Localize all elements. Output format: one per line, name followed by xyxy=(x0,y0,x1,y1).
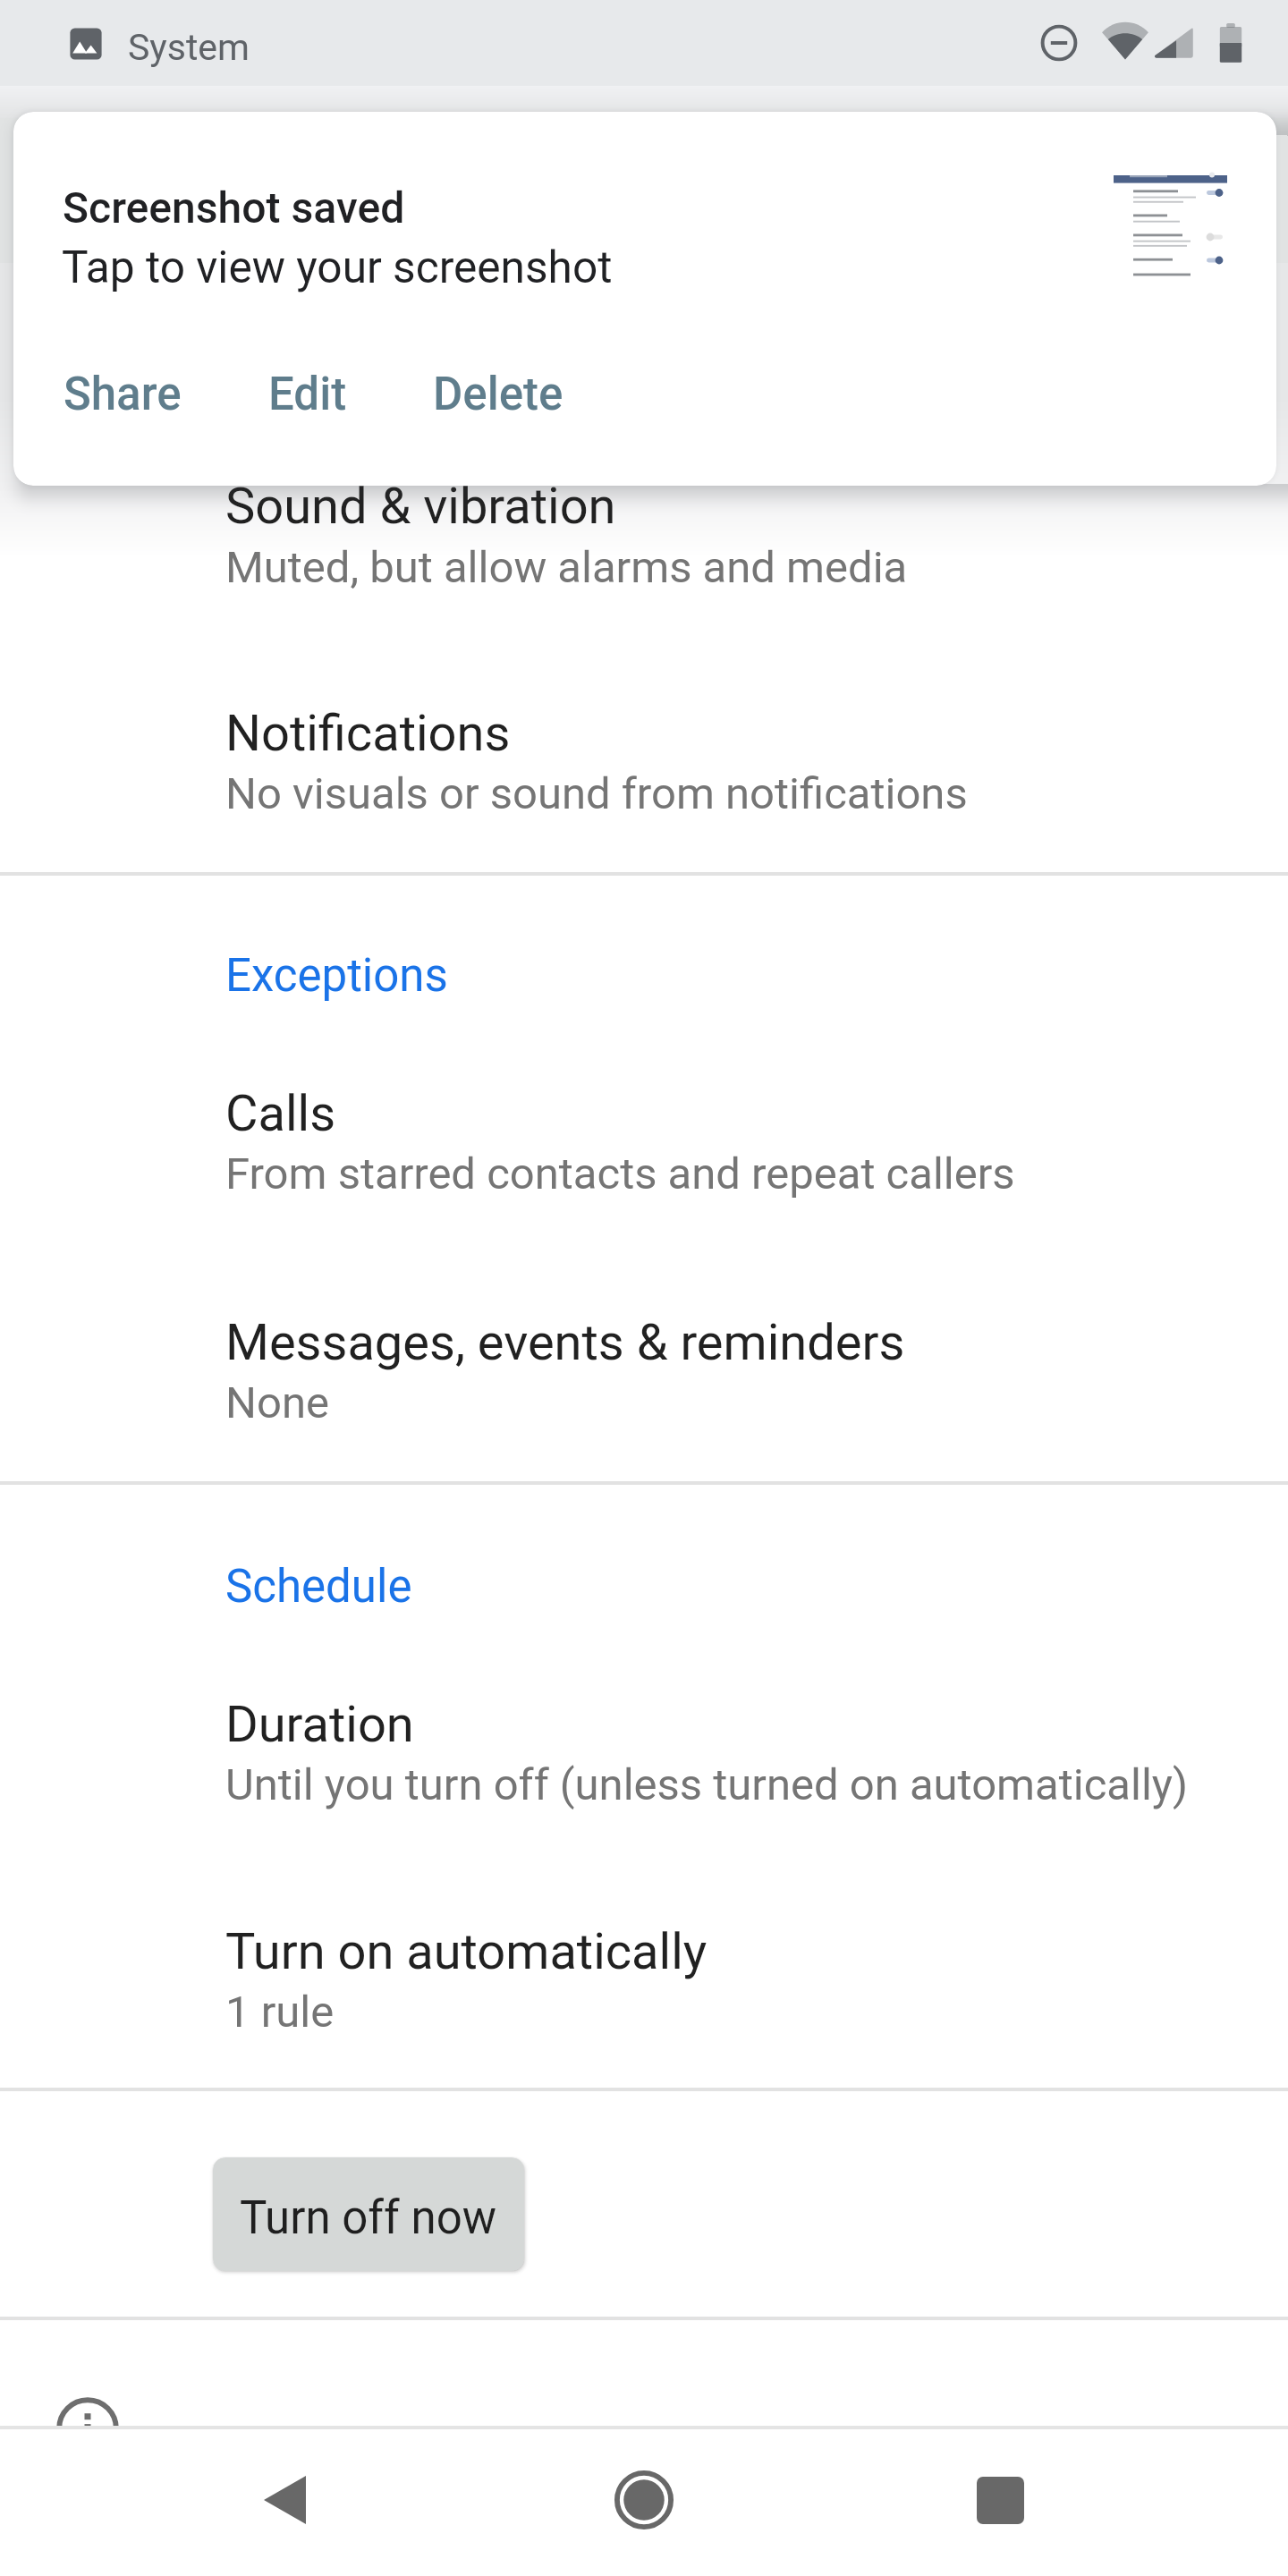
button[interactable]: Recent apps xyxy=(933,2433,1067,2567)
button[interactable]: Turn off now xyxy=(213,2157,524,2271)
staticText: Sound & vibration xyxy=(225,477,616,536)
staticText: Tap to view your screenshot xyxy=(62,241,613,293)
staticText: Muted, but allow alarms and media xyxy=(225,542,908,593)
button[interactable]: Back xyxy=(217,2433,352,2567)
staticText: 1 rule xyxy=(225,1987,335,2038)
button[interactable]: Screenshot saved xyxy=(13,112,1276,486)
staticText: Exceptions xyxy=(225,949,448,1003)
button[interactable]: Duration xyxy=(0,1673,1288,1816)
button[interactable]: Notifications xyxy=(0,682,1288,825)
button[interactable]: Turn on automatically xyxy=(0,1900,1288,2043)
staticText: Messages, events & reminders xyxy=(225,1313,905,1372)
staticText: Duration xyxy=(225,1695,414,1754)
button[interactable]: Edit xyxy=(263,355,352,434)
button[interactable]: Delete xyxy=(428,355,569,434)
button[interactable]: Home xyxy=(577,2433,711,2567)
staticText: Schedule xyxy=(225,1560,412,1614)
staticText: From starred contacts and repeat callers xyxy=(225,1148,1015,1199)
button[interactable]: Messages, events & reminders xyxy=(0,1291,1288,1434)
staticText: Until you turn off (unless turned on aut… xyxy=(225,1759,1189,1810)
staticText: Share xyxy=(64,368,182,421)
button[interactable]: Sound & vibration xyxy=(0,454,1288,597)
staticText: Turn off now xyxy=(240,2191,497,2245)
button[interactable]: Calls xyxy=(0,1062,1288,1205)
staticText: No visuals or sound from notifications xyxy=(225,768,968,819)
staticText: Notifications xyxy=(225,704,511,763)
staticText: Turn on automatically xyxy=(225,1922,708,1981)
staticText: Delete xyxy=(433,368,563,421)
staticText: System xyxy=(128,26,250,69)
staticText: Screenshot saved xyxy=(63,182,405,233)
staticText: Calls xyxy=(225,1084,336,1143)
staticText: Edit xyxy=(268,368,347,421)
staticText: None xyxy=(225,1377,329,1428)
button[interactable]: Share xyxy=(58,355,187,434)
